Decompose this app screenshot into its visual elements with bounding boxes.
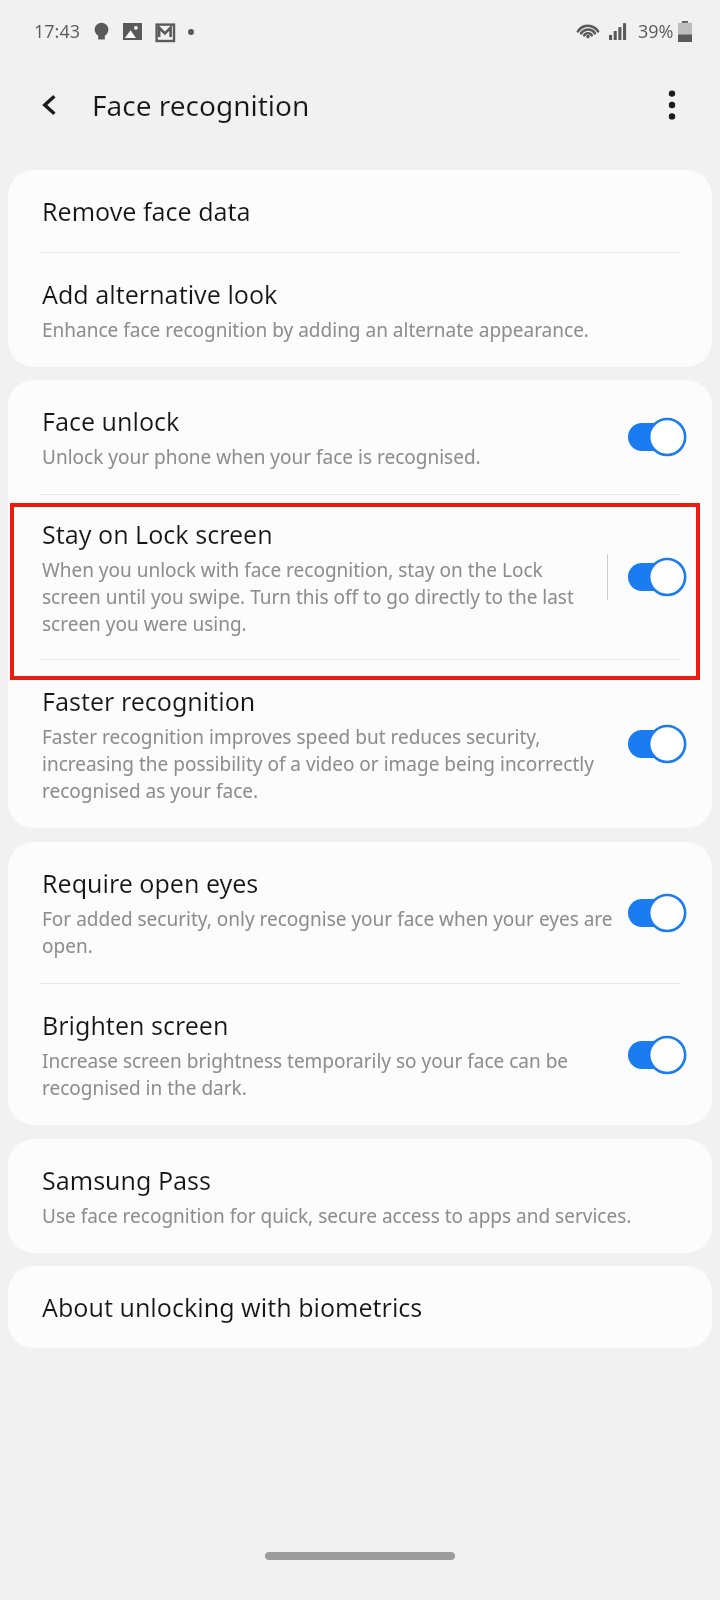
- staticText: Require open eyes: [42, 866, 259, 900]
- staticText: Samsung Pass: [42, 1163, 211, 1197]
- button[interactable]: Face unlock: [8, 380, 712, 494]
- button[interactable]: More options: [644, 77, 700, 133]
- staticText: Stay on Lock screen: [42, 517, 273, 551]
- button[interactable]: Brighten screen: [8, 984, 712, 1125]
- staticText: For added security, only recognise your …: [42, 906, 614, 959]
- staticText: Faster recognition: [42, 684, 256, 718]
- button[interactable]: About unlocking with biometrics: [8, 1266, 712, 1348]
- button[interactable]: Samsung Pass: [8, 1139, 712, 1253]
- button[interactable]: Add alternative look: [8, 253, 712, 367]
- button[interactable]: Toggle setting: [628, 417, 690, 457]
- staticText: 39%: [638, 19, 674, 44]
- staticText: Faster recognition improves speed but re…: [42, 724, 614, 804]
- staticText: When you unlock with face recognition, s…: [42, 557, 593, 637]
- button[interactable]: Require open eyes: [8, 842, 712, 983]
- staticText: Add alternative look: [42, 277, 278, 311]
- button[interactable]: Toggle setting: [628, 893, 690, 933]
- button[interactable]: Toggle setting: [628, 557, 690, 597]
- staticText: Increase screen brightness temporarily s…: [42, 1048, 614, 1101]
- staticText: Unlock your phone when your face is reco…: [42, 444, 481, 470]
- staticText: 17:43: [34, 19, 81, 44]
- button[interactable]: Stay on Lock screen: [8, 495, 712, 659]
- staticText: Enhance face recognition by adding an al…: [42, 317, 589, 343]
- button[interactable]: Faster recognition: [8, 660, 712, 828]
- staticText: Face recognition: [92, 86, 310, 124]
- button[interactable]: Toggle setting: [628, 724, 690, 764]
- staticText: Brighten screen: [42, 1008, 229, 1042]
- staticText: Use face recognition for quick, secure a…: [42, 1203, 632, 1229]
- staticText: Face unlock: [42, 404, 180, 438]
- staticText: Remove face data: [42, 194, 251, 228]
- button[interactable]: Toggle setting: [628, 1035, 690, 1075]
- button[interactable]: Back: [22, 77, 78, 133]
- button[interactable]: Remove face data: [8, 170, 712, 252]
- staticText: About unlocking with biometrics: [42, 1290, 423, 1324]
